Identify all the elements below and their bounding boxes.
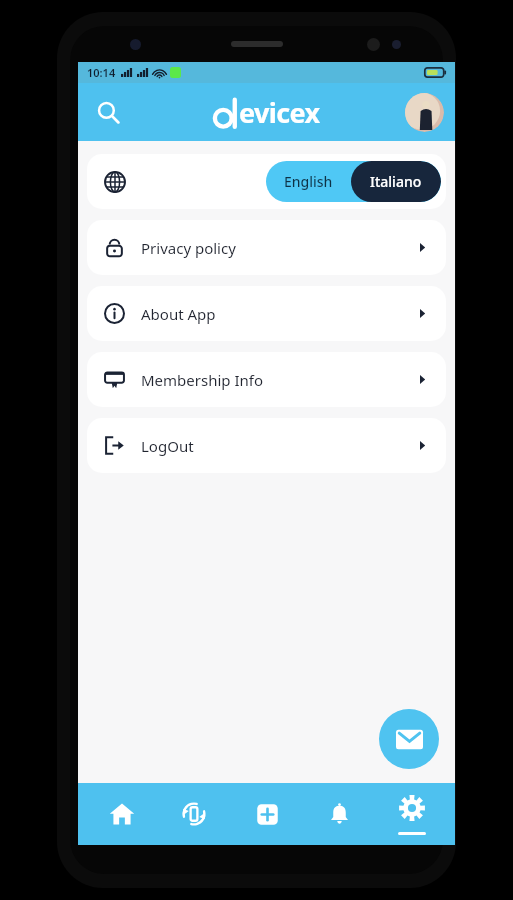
button[interactable]: LogOut [87,418,446,473]
staticText: 10:14 [87,65,116,80]
button[interactable]: Search [86,90,130,134]
staticText: Membership Info [141,370,264,390]
button[interactable]: Italiano [351,161,441,202]
staticText: evicex [239,94,320,131]
staticText: About App [141,304,216,324]
button[interactable]: Sync device [165,785,223,843]
button[interactable]: Notifications [310,785,368,843]
button[interactable]: Membership Info [87,352,446,407]
button[interactable]: Add [238,785,296,843]
staticText: Italiano [370,172,422,191]
button[interactable]: Messages [379,709,439,769]
button[interactable]: Privacy policy [87,220,446,275]
button[interactable]: Profile [405,93,444,132]
button[interactable]: Settings [383,785,441,843]
staticText: Privacy policy [141,238,236,258]
staticText: LogOut [141,436,194,456]
button[interactable]: Home [93,785,151,843]
button[interactable]: English [266,161,351,202]
button[interactable]: About App [87,286,446,341]
staticText: English [284,172,333,191]
